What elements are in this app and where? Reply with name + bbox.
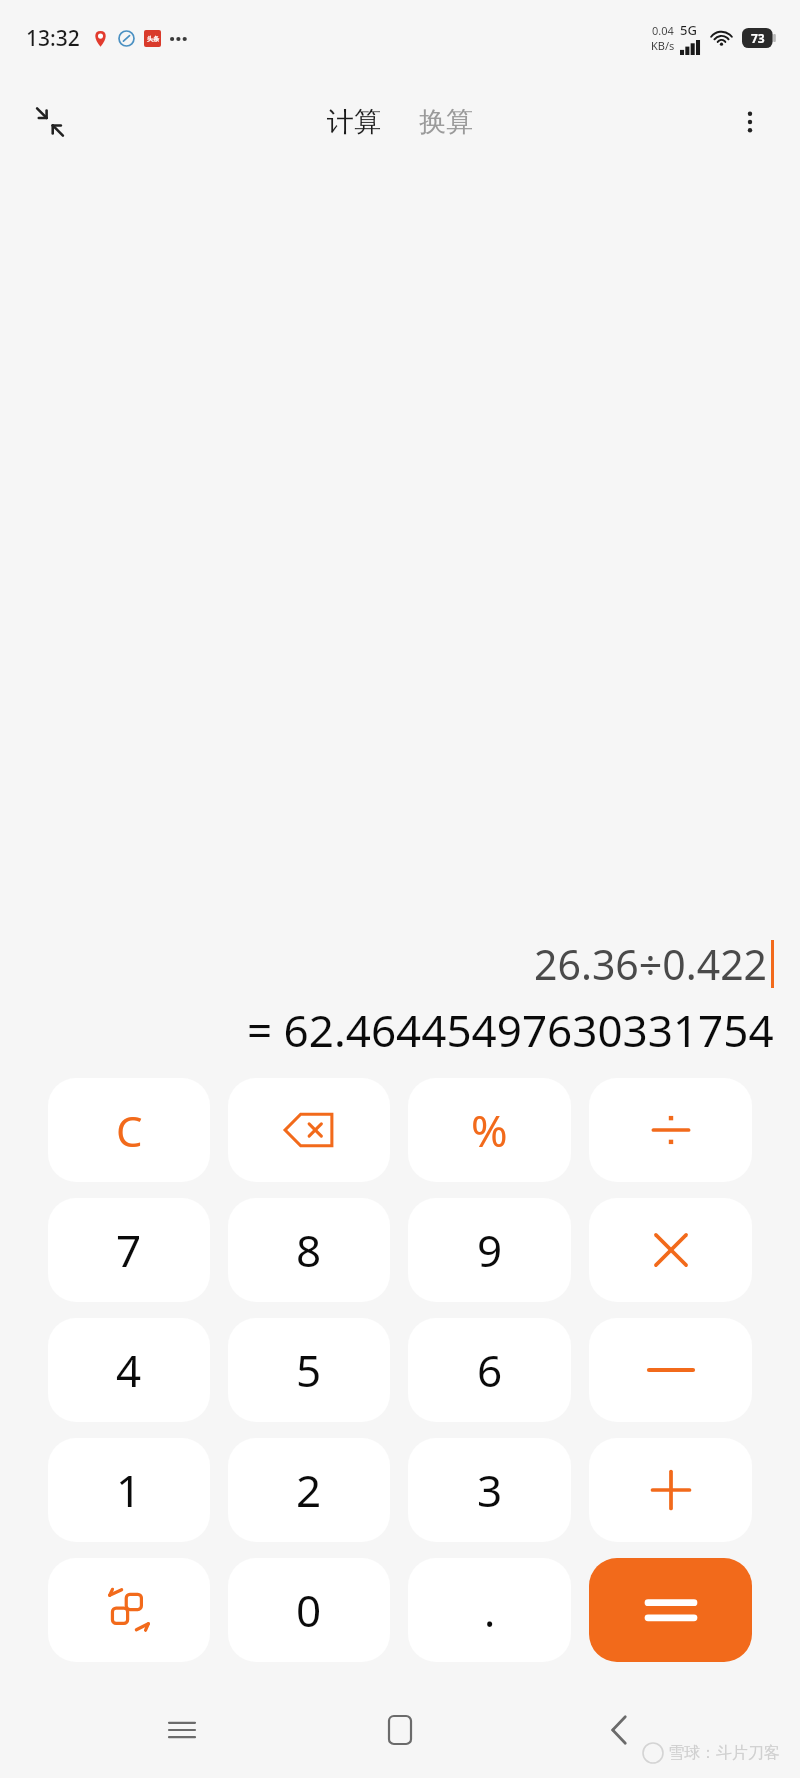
staticText: 6 [477,1340,503,1400]
staticText: 13:32 [26,24,80,53]
staticText: 73 [751,30,765,46]
button[interactable]: Unit convert [48,1558,210,1662]
button[interactable]: Home [363,1693,437,1767]
staticText: 4 [116,1340,142,1400]
staticText: 26.36÷0.422 [534,936,768,992]
button[interactable]: 7 [48,1198,210,1302]
button[interactable]: ÷ [589,1078,752,1182]
staticText: 0 [296,1580,322,1640]
button[interactable]: 6 [408,1318,571,1422]
staticText: . [484,1582,496,1639]
staticText: = 62.46445497630331754 [247,1000,774,1060]
button[interactable]: 换算 [411,99,481,145]
staticText: 5G [680,21,697,39]
staticText: 7 [116,1220,142,1280]
button[interactable]: 1 [48,1438,210,1542]
button[interactable]: Recent apps [145,1693,219,1767]
staticText: % [471,1100,508,1160]
button[interactable]: 计算 [319,99,389,145]
button[interactable]: − [589,1318,752,1422]
button[interactable]: % [408,1078,571,1182]
button[interactable]: 8 [228,1198,390,1302]
staticText: 3 [477,1460,503,1520]
button[interactable]: Back [582,1693,656,1767]
button[interactable]: 9 [408,1198,571,1302]
button[interactable]: 0 [228,1558,390,1662]
button[interactable]: + [589,1438,752,1542]
button[interactable]: . [408,1558,571,1662]
staticText: C [116,1102,143,1159]
staticText: 计算 [327,105,381,139]
staticText: 0.04 [652,23,674,38]
button[interactable]: Backspace [228,1078,390,1182]
staticText: 雪球：斗片刀客 [668,1743,780,1763]
staticText: 头条 [147,35,159,43]
button[interactable]: 2 [228,1438,390,1542]
button[interactable]: 5 [228,1318,390,1422]
staticText: KB/s [651,38,675,53]
button[interactable]: × [589,1198,752,1302]
staticText: 5 [296,1340,322,1400]
button[interactable]: More options [722,94,778,150]
staticText: 8 [296,1220,322,1280]
button[interactable]: = [589,1558,752,1662]
staticText: 换算 [419,105,473,139]
button[interactable]: Collapse [22,94,78,150]
staticText: 1 [116,1460,142,1520]
button[interactable]: C [48,1078,210,1182]
button[interactable]: 3 [408,1438,571,1542]
button[interactable]: 4 [48,1318,210,1422]
staticText: 9 [477,1220,503,1280]
staticText: 2 [296,1460,322,1520]
